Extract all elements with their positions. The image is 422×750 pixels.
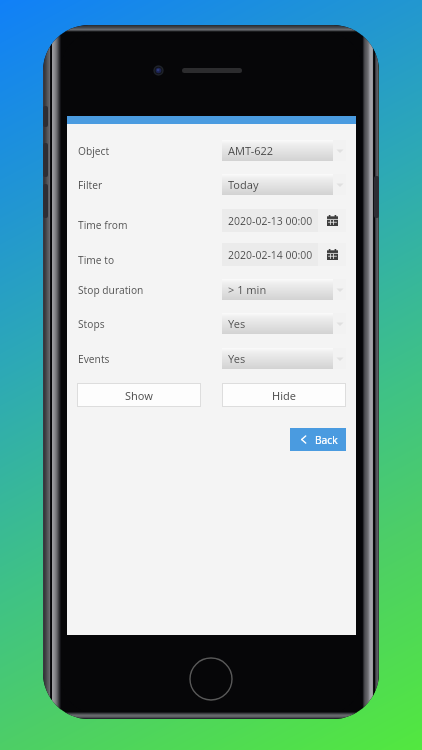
staticText: Stops	[78, 317, 105, 331]
button[interactable]: Today	[222, 174, 346, 195]
button[interactable]: Yes	[222, 348, 346, 369]
staticText: Events	[78, 352, 110, 366]
staticText: 2020-02-13 00:00	[228, 214, 313, 228]
button[interactable]: 2020-02-14 00:00	[222, 243, 346, 266]
staticText: Back	[315, 433, 338, 447]
staticText: Time to	[78, 253, 115, 267]
staticText: Show	[125, 388, 153, 403]
button[interactable]: Show	[78, 384, 200, 406]
staticText: Time from	[78, 218, 128, 232]
staticText: Filter	[78, 178, 103, 192]
button[interactable]: Yes	[222, 313, 346, 334]
staticText: Yes	[228, 316, 246, 331]
staticText: AMT-622	[228, 143, 274, 158]
button[interactable]: > 1 min	[222, 279, 346, 300]
staticText: > 1 min	[228, 282, 267, 297]
button[interactable]: 2020-02-13 00:00	[222, 209, 346, 232]
staticText: Hide	[272, 388, 296, 403]
staticText: Object	[78, 144, 110, 158]
button[interactable]: Hide	[223, 384, 345, 406]
staticText: Today	[228, 177, 259, 192]
button[interactable]: Back	[290, 428, 346, 451]
button[interactable]: AMT-622	[222, 140, 346, 161]
staticText: Stop duration	[78, 283, 144, 297]
staticText: 2020-02-14 00:00	[228, 248, 313, 262]
staticText: Yes	[228, 351, 246, 366]
